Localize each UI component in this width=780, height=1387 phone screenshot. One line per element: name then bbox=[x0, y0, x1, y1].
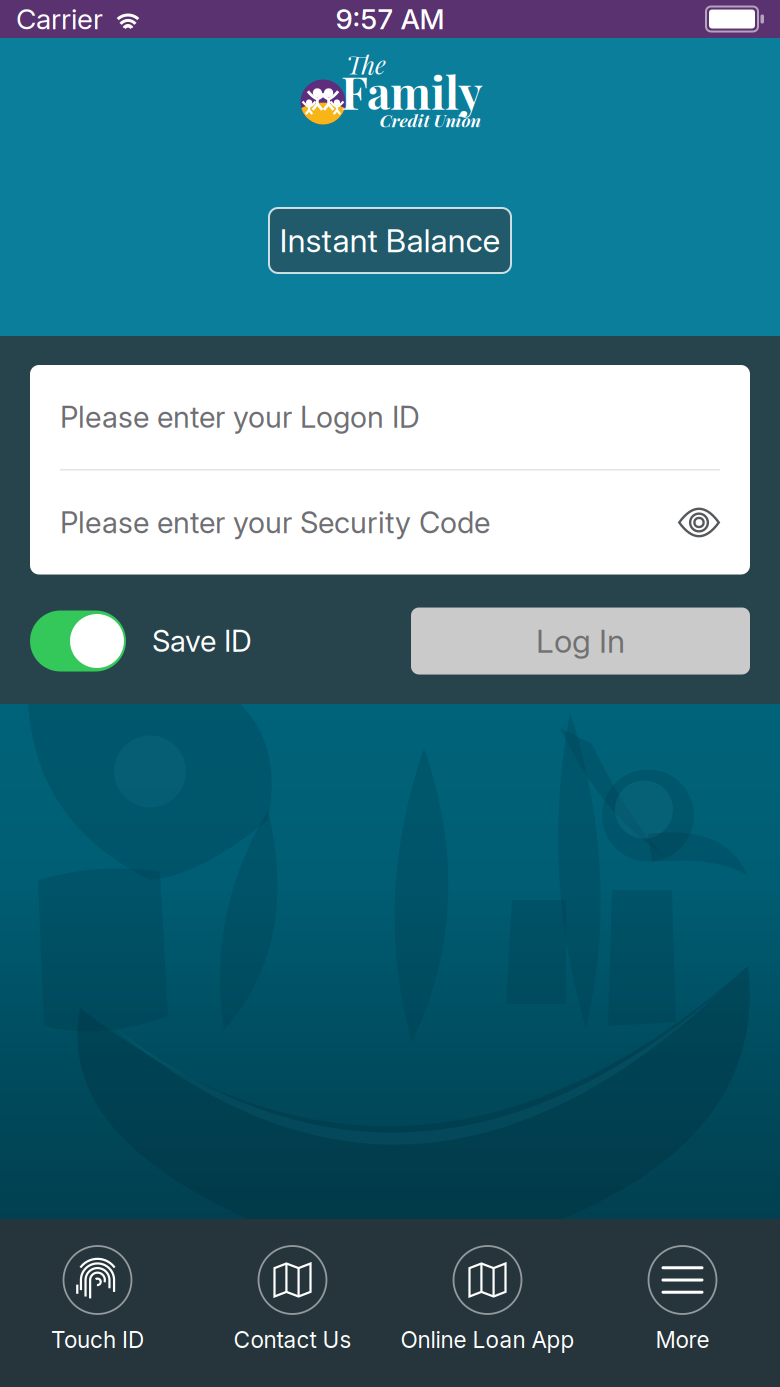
button[interactable]: Please enter your Security Code bbox=[30, 470, 750, 574]
button[interactable]: Please enter your Logon ID bbox=[30, 365, 750, 469]
staticText: Family bbox=[341, 61, 483, 121]
staticText: The bbox=[346, 47, 386, 81]
staticText: 9:57 AM bbox=[335, 2, 444, 36]
staticText: Touch ID bbox=[51, 1326, 144, 1353]
button[interactable]: Save ID bbox=[30, 610, 252, 671]
staticText: Save ID bbox=[152, 623, 252, 659]
staticText: Please enter your Security Code bbox=[60, 505, 490, 540]
button[interactable]: Log In bbox=[411, 607, 750, 674]
staticText: Carrier bbox=[16, 2, 103, 36]
button[interactable]: Instant Balance bbox=[269, 208, 511, 273]
button[interactable]: Touch ID bbox=[0, 1246, 195, 1353]
staticText: Credit Union bbox=[379, 108, 480, 131]
staticText: Contact Us bbox=[233, 1326, 351, 1353]
staticText: Log In bbox=[536, 622, 625, 660]
staticText: Online Loan App bbox=[400, 1326, 574, 1353]
staticText: Please enter your Logon ID bbox=[60, 399, 420, 435]
button[interactable]: Contact Us bbox=[195, 1246, 390, 1353]
button[interactable]: More bbox=[585, 1246, 780, 1353]
button[interactable]: Online Loan App bbox=[390, 1246, 585, 1353]
staticText: More bbox=[655, 1326, 709, 1353]
staticText: Instant Balance bbox=[279, 221, 500, 260]
